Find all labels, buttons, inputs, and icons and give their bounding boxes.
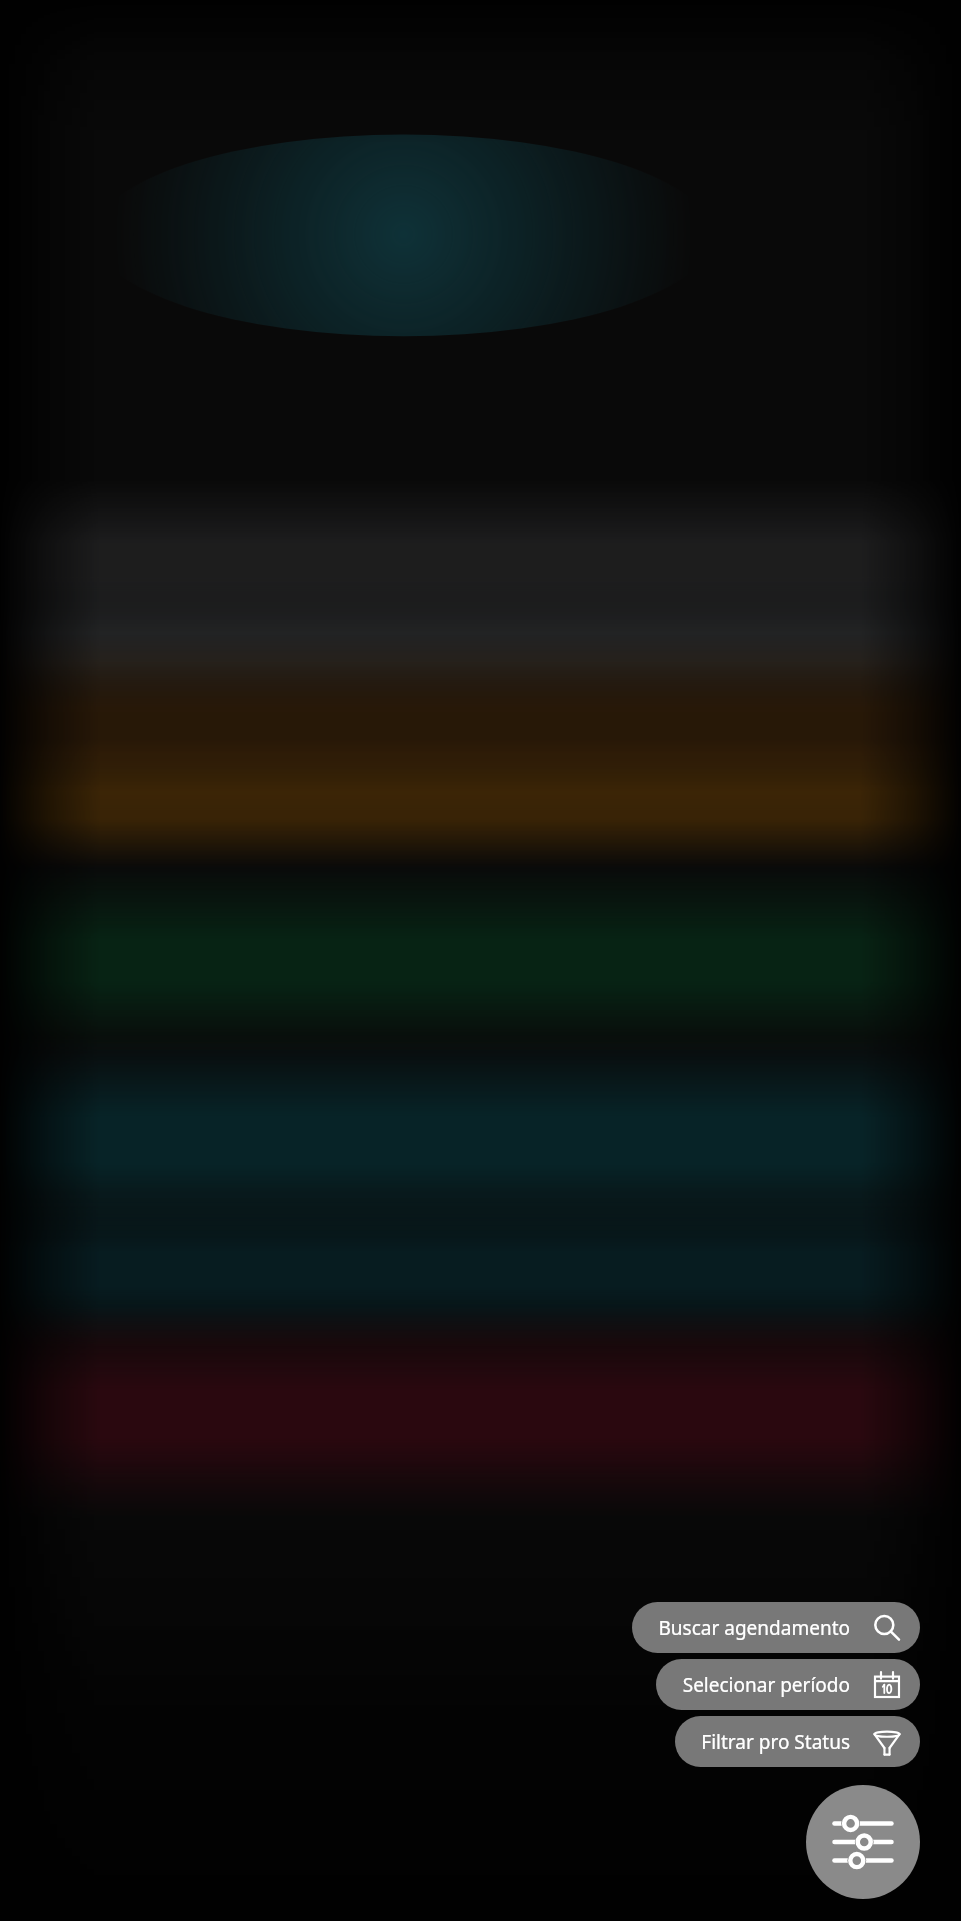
staticText: Selecionar período: [682, 1672, 850, 1698]
staticText: Buscar agendamento: [658, 1615, 850, 1641]
button[interactable]: Filtrar pro Status: [675, 1716, 920, 1767]
button[interactable]: Abrir filtros: [806, 1785, 920, 1899]
button[interactable]: Selecionar período: [656, 1659, 920, 1710]
staticText: Filtrar pro Status: [701, 1729, 850, 1755]
button[interactable]: Buscar agendamento: [632, 1602, 920, 1653]
